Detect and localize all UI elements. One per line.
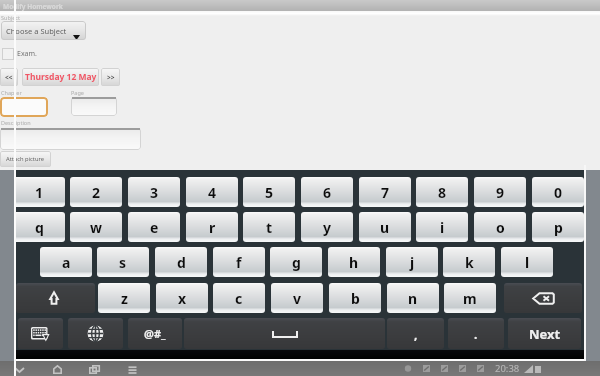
button[interactable]: z	[98, 283, 150, 313]
staticText: i	[440, 218, 445, 237]
button[interactable]: Shift	[16, 283, 95, 313]
staticText: m	[463, 289, 477, 308]
button[interactable]: Choose a Subject	[1, 21, 86, 40]
button[interactable]: h	[328, 247, 380, 277]
staticText: 4	[208, 183, 217, 202]
staticText: r	[209, 218, 216, 237]
staticText: @#_	[144, 326, 166, 341]
button[interactable]: Thursday 12 May	[22, 68, 99, 86]
staticText: 2	[92, 183, 101, 202]
staticText: o	[496, 218, 505, 237]
staticText: l	[525, 253, 530, 272]
button[interactable]: 7	[359, 177, 411, 207]
button[interactable]: e	[128, 212, 180, 242]
staticText: f	[236, 253, 242, 272]
staticText: v	[293, 289, 301, 308]
button[interactable]: b	[329, 283, 381, 313]
staticText: b	[351, 289, 360, 308]
button[interactable]: Recent apps	[83, 361, 105, 376]
button[interactable]: i	[416, 212, 468, 242]
button[interactable]: v	[271, 283, 323, 313]
staticText: Next	[529, 325, 561, 343]
button[interactable]: Back	[8, 361, 30, 376]
staticText: Chapter	[1, 89, 22, 96]
button[interactable]: f	[213, 247, 265, 277]
button[interactable]: p	[532, 212, 584, 242]
button[interactable]: Exam.	[2, 47, 37, 60]
staticText: Description	[1, 119, 31, 126]
staticText: n	[408, 289, 418, 308]
button[interactable]: 3	[128, 177, 180, 207]
button[interactable]: 6	[301, 177, 353, 207]
button[interactable]: c	[213, 283, 265, 313]
staticText: Exam.	[17, 49, 37, 59]
button[interactable]: 5	[243, 177, 295, 207]
button[interactable]	[0, 128, 141, 150]
button[interactable]: w	[70, 212, 122, 242]
button[interactable]: d	[155, 247, 207, 277]
button[interactable]: m	[444, 283, 496, 313]
button[interactable]: y	[301, 212, 353, 242]
staticText: >>	[107, 73, 115, 82]
button[interactable]: k	[443, 247, 495, 277]
button[interactable]: l	[501, 247, 553, 277]
staticText: s	[119, 253, 127, 272]
staticText: e	[150, 218, 159, 237]
button[interactable]: u	[359, 212, 411, 242]
staticText: Choose a Subject	[6, 26, 67, 36]
staticText: .	[474, 326, 478, 342]
button[interactable]: Backspace	[504, 283, 582, 313]
button[interactable]: 2	[70, 177, 122, 207]
button[interactable]: 0	[532, 177, 584, 207]
staticText: 20:38	[495, 362, 520, 375]
staticText: q	[35, 218, 44, 237]
staticText: 3	[150, 183, 159, 202]
staticText: x	[178, 289, 187, 308]
button[interactable]: Hide keyboard	[18, 318, 63, 349]
staticText: <<	[5, 73, 13, 82]
staticText: 0	[554, 183, 563, 202]
staticText: 1	[35, 183, 44, 202]
staticText: z	[121, 289, 128, 308]
staticText: j	[410, 253, 415, 272]
staticText: g	[292, 253, 301, 272]
button[interactable]: g	[270, 247, 322, 277]
staticText: ,	[414, 326, 418, 342]
staticText: 6	[323, 183, 332, 202]
button[interactable]	[0, 97, 48, 117]
button[interactable]: Space	[184, 318, 385, 349]
button[interactable]: r	[186, 212, 238, 242]
button[interactable]: Menu	[121, 361, 143, 376]
button[interactable]: 8	[416, 177, 468, 207]
staticText: y	[323, 218, 331, 237]
staticText: t	[266, 218, 273, 237]
button[interactable]: 4	[186, 177, 238, 207]
staticText: 9	[496, 183, 505, 202]
button[interactable]: @#_	[128, 318, 182, 349]
button[interactable]: j	[386, 247, 438, 277]
button[interactable]: Change language	[68, 318, 123, 349]
button[interactable]: s	[97, 247, 149, 277]
button[interactable]: a	[40, 247, 92, 277]
button[interactable]: x	[156, 283, 208, 313]
button[interactable]: >>	[101, 68, 120, 86]
button[interactable]: n	[387, 283, 439, 313]
button[interactable]: ,	[387, 318, 444, 349]
button[interactable]: Attach picture	[0, 151, 51, 167]
staticText: Subject	[1, 14, 20, 21]
staticText: d	[177, 253, 186, 272]
button[interactable]	[71, 97, 117, 116]
button[interactable]: t	[243, 212, 295, 242]
button[interactable]: Home	[46, 361, 68, 376]
button[interactable]: o	[474, 212, 526, 242]
button[interactable]: <<	[0, 68, 18, 86]
staticText: 8	[438, 183, 447, 202]
staticText: h	[349, 253, 359, 272]
button[interactable]: 1	[13, 177, 65, 207]
staticText: c	[235, 289, 243, 308]
button[interactable]: q	[13, 212, 65, 242]
button[interactable]: .	[448, 318, 504, 349]
staticText: Page	[71, 89, 84, 96]
button[interactable]: Next	[508, 318, 581, 349]
button[interactable]: 9	[474, 177, 526, 207]
